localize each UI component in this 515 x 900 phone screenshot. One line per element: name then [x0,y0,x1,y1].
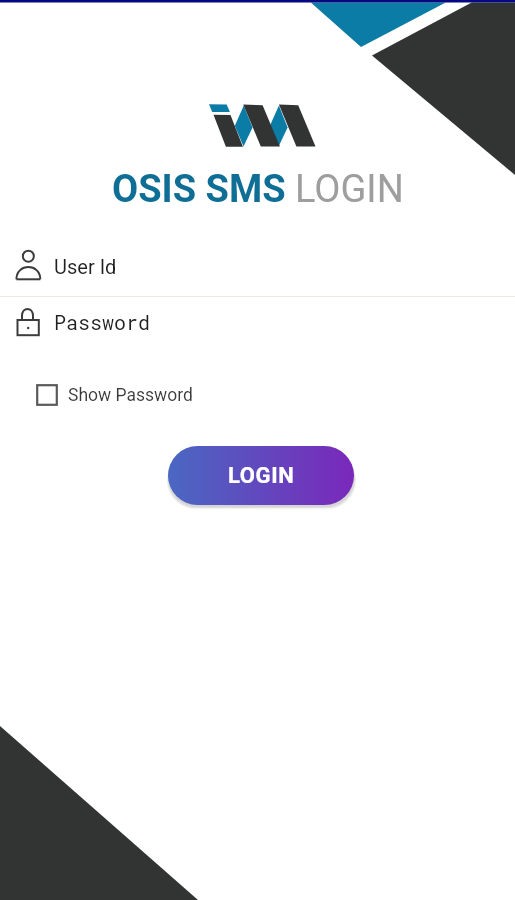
button[interactable]: Show Password [36,384,193,406]
staticText: Password [54,309,151,335]
button[interactable]: Password [0,297,515,349]
other: OSIS logo [209,104,313,147]
staticText: OSIS SMS LOGIN [112,167,404,212]
staticText: Show Password [68,385,193,406]
button[interactable]: User Id [0,240,515,296]
staticText: LOGIN [228,463,295,489]
staticText: User Id [54,255,117,278]
button[interactable]: LOGIN [168,446,354,505]
